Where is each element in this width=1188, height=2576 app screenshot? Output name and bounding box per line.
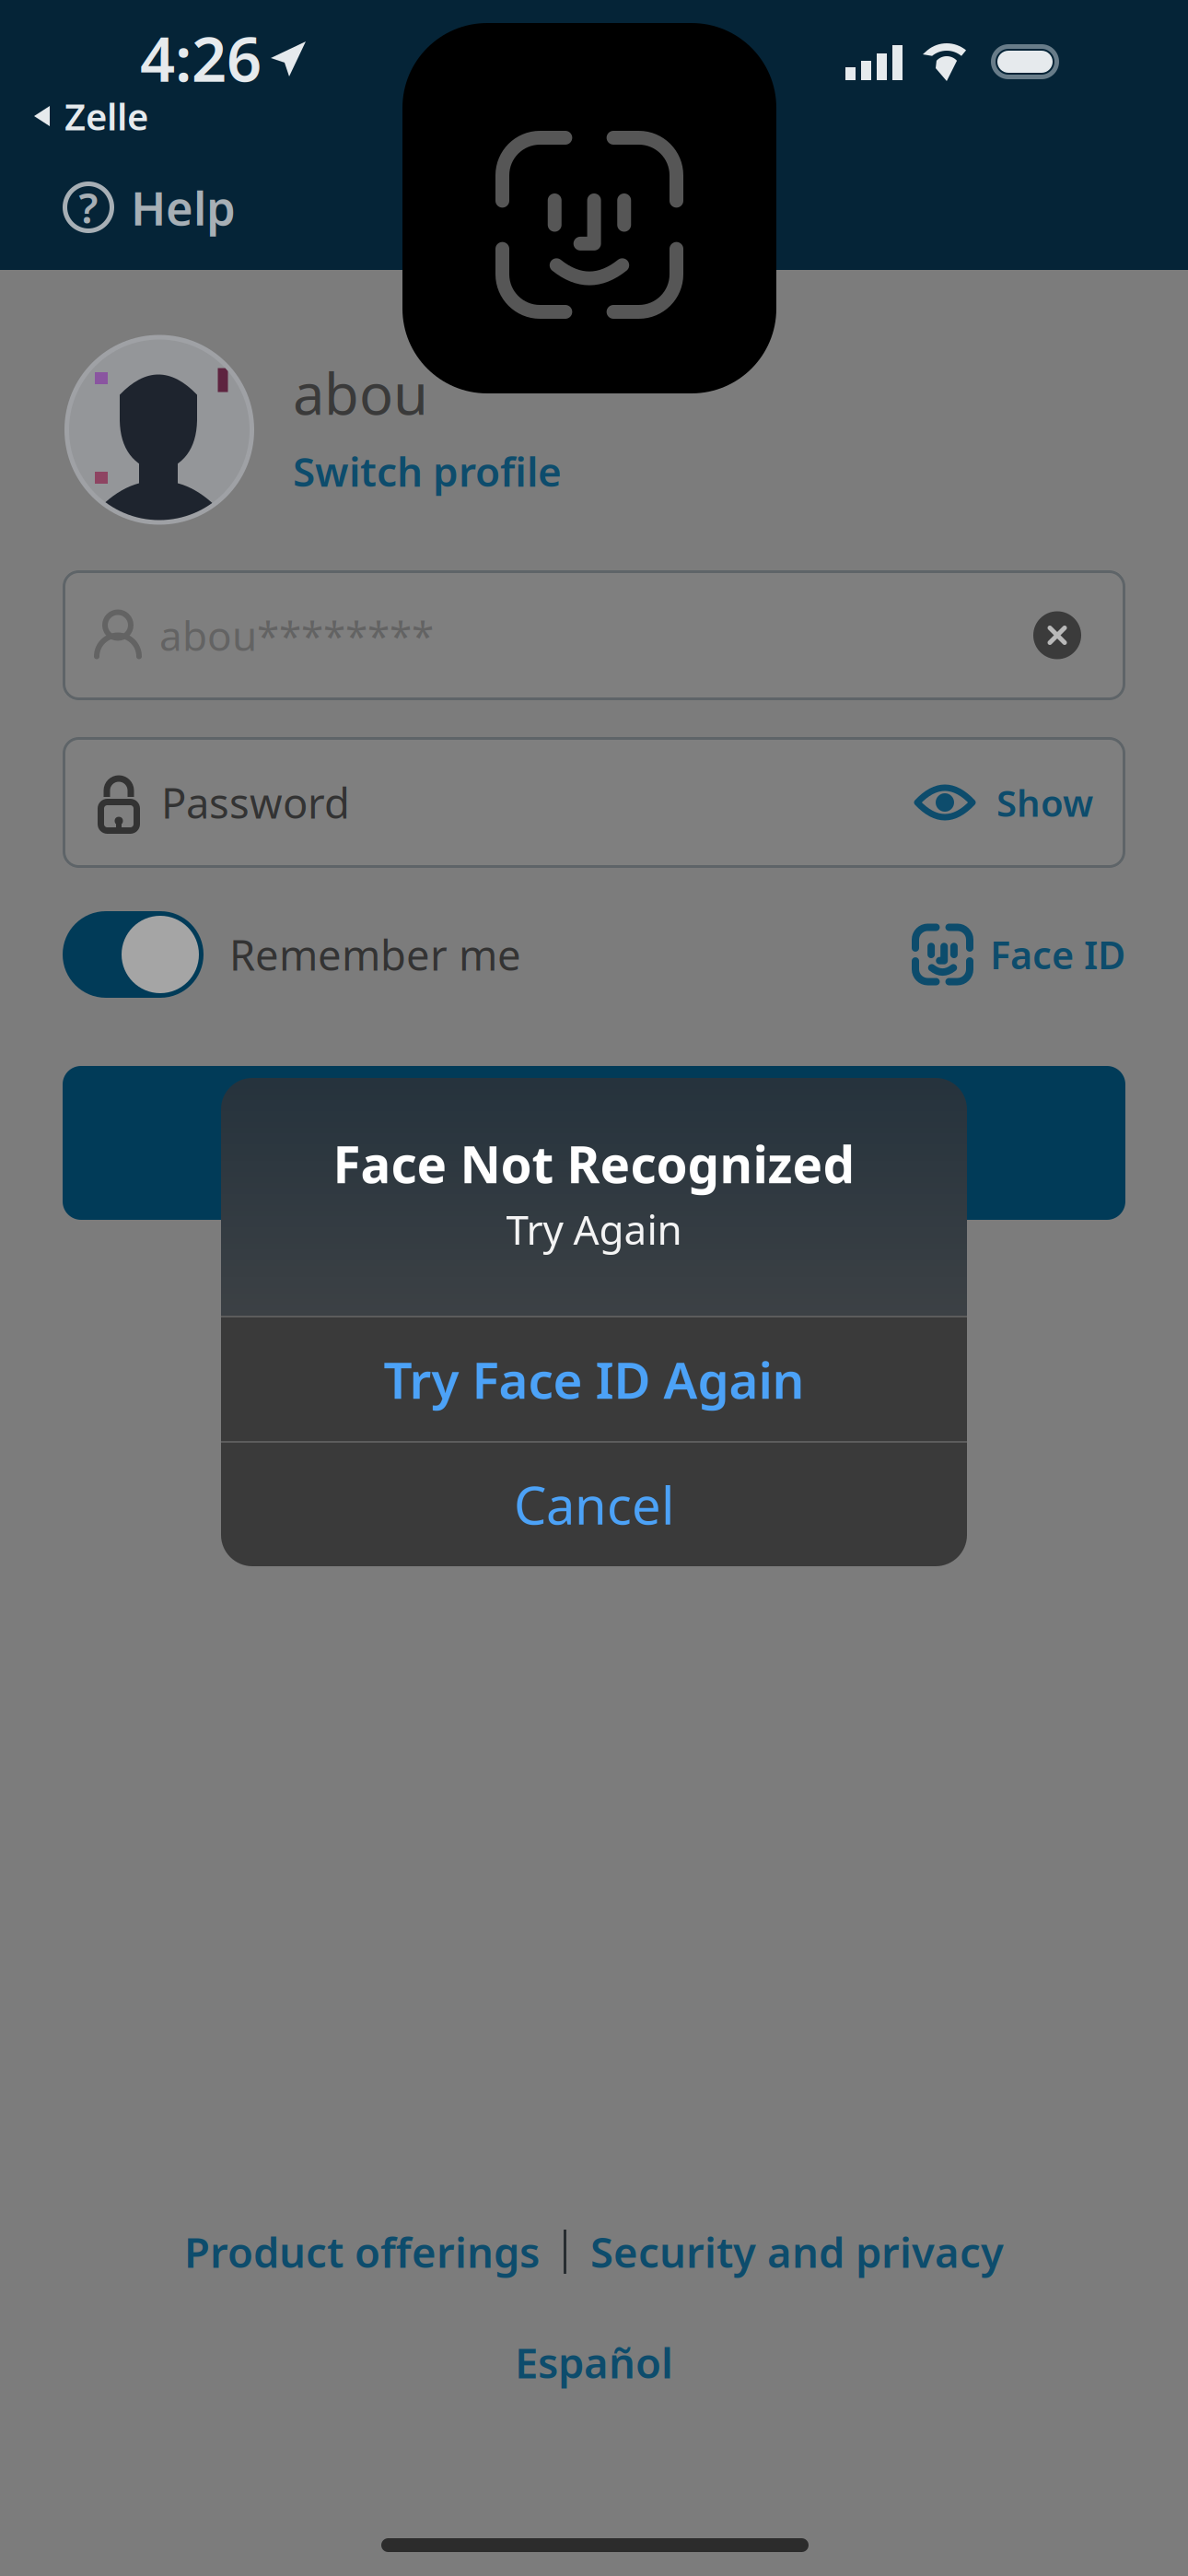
staticText: Zelle — [64, 91, 148, 141]
staticText: Remember me — [229, 926, 521, 983]
button[interactable]: Security and privacy — [590, 2215, 1004, 2289]
button[interactable]: Switch profile — [293, 437, 562, 505]
button[interactable]: Español — [515, 2325, 673, 2399]
button[interactable]: Try Face ID Again — [221, 1317, 967, 1441]
staticText: Try Face ID Again — [384, 1345, 804, 1414]
staticText: Password — [161, 774, 350, 831]
staticText: Español — [515, 2334, 673, 2391]
staticText: abou — [293, 354, 428, 431]
staticText: Security and privacy — [590, 2223, 1004, 2280]
staticText: Help — [131, 176, 236, 239]
button[interactable]: Face ID — [912, 901, 1125, 1008]
staticText: Sign in — [514, 1109, 674, 1176]
staticText: 4:26 — [140, 16, 262, 100]
button[interactable]: Product offerings — [184, 2215, 540, 2289]
button[interactable]: Remember me — [63, 901, 521, 1008]
staticText: abou******** — [159, 608, 434, 663]
staticText: Product offerings — [184, 2223, 540, 2280]
button[interactable]: Sign in — [63, 1066, 1125, 1220]
button[interactable]: Clear text — [1013, 591, 1101, 679]
staticText: Show — [996, 777, 1093, 828]
button[interactable]: Cancel — [221, 1443, 967, 1566]
staticText: ? — [79, 179, 98, 236]
button[interactable]: ? — [0, 170, 339, 244]
staticText: Cancel — [514, 1469, 674, 1540]
button[interactable]: Show — [914, 756, 1093, 849]
staticText: Switch profile — [293, 443, 562, 499]
staticText: Try Again — [506, 1201, 682, 1257]
staticText: Face Not Recognized — [333, 1129, 855, 1198]
staticText: Face ID — [990, 929, 1125, 980]
button[interactable]: Zelle — [0, 90, 262, 142]
